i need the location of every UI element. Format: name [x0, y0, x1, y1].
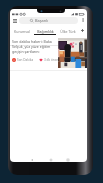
staticText: Son dakika haberi: Baka Selçuk, yüz yüze… [12, 39, 52, 54]
button[interactable]: More options [80, 17, 86, 23]
button[interactable]: Add tab [79, 26, 86, 35]
staticText: Kurumsal [14, 29, 30, 34]
button[interactable]: Kurumsal [10, 26, 33, 35]
staticText: 3 dk önce [44, 58, 58, 62]
staticText: Bağımlılık [37, 29, 54, 34]
button[interactable]: Home [46, 155, 56, 162]
button[interactable]: Menu [11, 17, 18, 24]
staticText: Başarılı [35, 18, 49, 23]
button[interactable]: Bağımlılık [33, 26, 57, 35]
button[interactable]: Başarılı [19, 17, 78, 24]
button[interactable]: Back [27, 155, 37, 162]
staticText: Ülke Türk [60, 29, 76, 34]
button[interactable]: Son dakika haberi: Baka Selçuk, yüz yüze… [10, 37, 87, 79]
staticText: Son Dakika [17, 58, 34, 62]
button[interactable]: Ülke Türk [57, 26, 79, 35]
button[interactable]: Recents [63, 155, 73, 162]
